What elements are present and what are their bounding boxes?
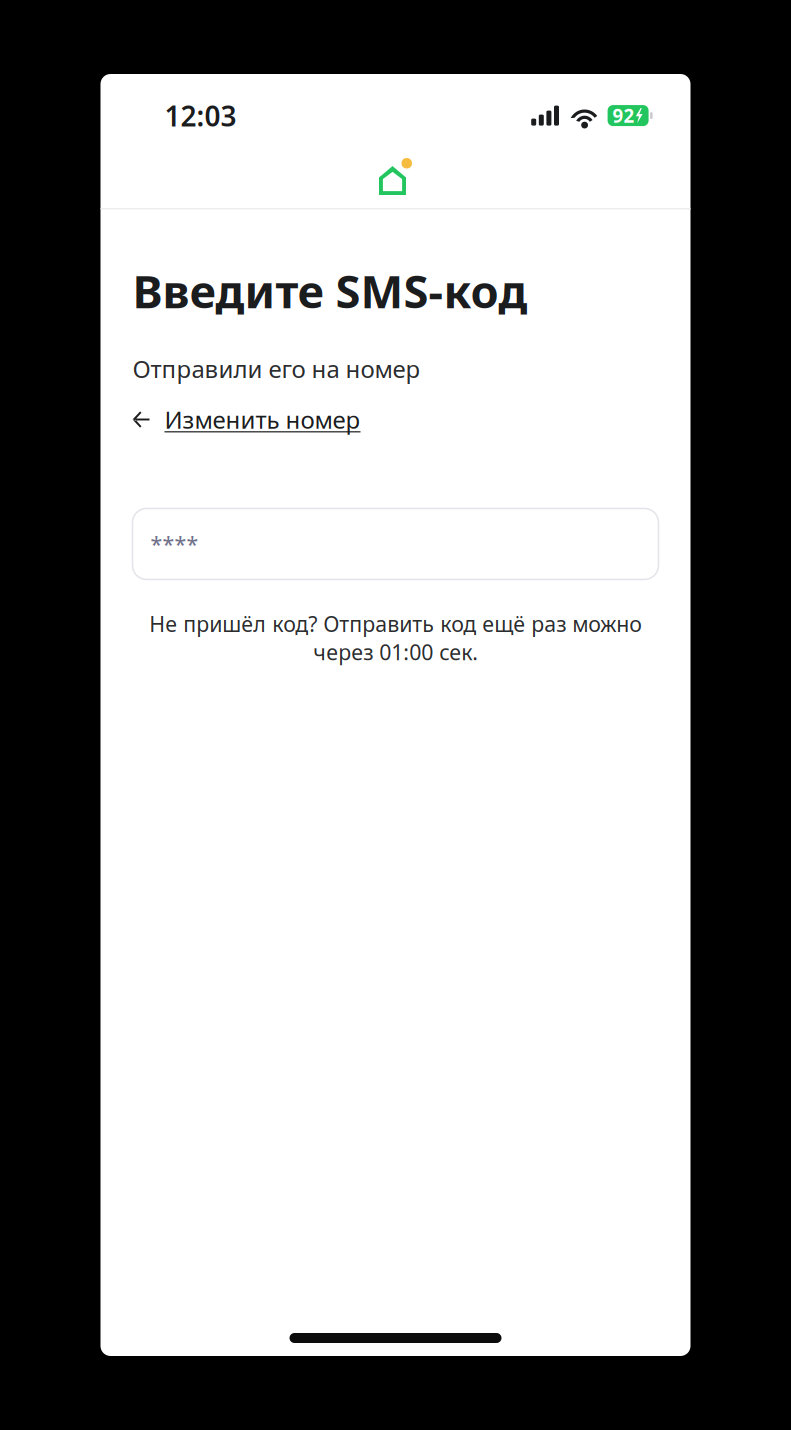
staticText: 92 (613, 103, 635, 128)
staticText: Отправили его на номер (132, 353, 420, 385)
button[interactable]: Home (100, 144, 690, 208)
button[interactable]: **** (132, 508, 658, 579)
button[interactable]: Изменить номер (132, 404, 360, 435)
staticText: Не пришёл код? Отправить код ещё раз мож… (149, 609, 642, 666)
staticText: 12:03 (164, 97, 236, 134)
staticText: Изменить номер (164, 404, 360, 435)
staticText: Введите SMS-код (132, 260, 527, 321)
staticText: **** (150, 529, 198, 558)
